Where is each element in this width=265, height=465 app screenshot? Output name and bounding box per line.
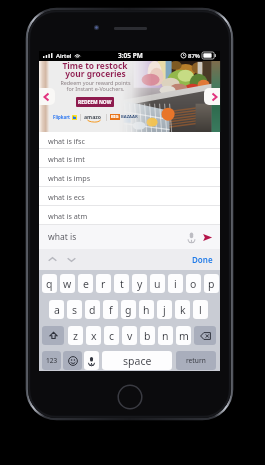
button[interactable]: f (103, 300, 118, 319)
staticText: r (101, 277, 106, 291)
staticText: 3:05 PM (118, 51, 143, 60)
button[interactable]: r (96, 274, 111, 293)
staticText: s (72, 303, 78, 317)
button[interactable] (84, 351, 99, 370)
staticText: e (83, 277, 89, 291)
button[interactable]: d (85, 300, 100, 319)
button[interactable]: v (122, 326, 137, 345)
button[interactable]: l (193, 300, 208, 319)
staticText: o (190, 277, 197, 291)
staticText: what is atm (48, 211, 88, 221)
button[interactable]: Done (185, 250, 220, 269)
button[interactable]: what is atm (39, 206, 220, 225)
staticText: c (109, 329, 115, 343)
staticText: v (127, 329, 133, 343)
staticText: n (162, 329, 169, 343)
button[interactable]: g (121, 300, 136, 319)
staticText: space (123, 354, 152, 368)
staticText: what is imps (48, 173, 91, 183)
staticText: what is ifsc (48, 136, 85, 146)
button[interactable]: space (102, 351, 172, 370)
button[interactable]: 123 (42, 351, 61, 370)
staticText: Airtel (56, 52, 72, 60)
button[interactable]: k (175, 300, 190, 319)
button[interactable]: q (42, 274, 57, 293)
button[interactable]: c (104, 326, 119, 345)
button[interactable]: w (60, 274, 75, 293)
staticText: l (199, 303, 202, 317)
button[interactable] (42, 326, 64, 345)
staticText: b (144, 329, 151, 343)
staticText: g (125, 303, 132, 317)
staticText: amazon (84, 113, 103, 121)
button[interactable]: e (78, 274, 93, 293)
button[interactable]: Send (202, 232, 213, 243)
button[interactable]: Next field (66, 254, 77, 265)
staticText: d (89, 303, 96, 317)
staticText: Flipkart (53, 114, 71, 120)
button[interactable]: p (204, 274, 219, 293)
staticText: 123 (46, 356, 58, 365)
button[interactable]: Previous offer (39, 88, 55, 105)
button[interactable]: s (67, 300, 82, 319)
staticText: what is ecs (48, 192, 85, 202)
button[interactable]: o (186, 274, 201, 293)
staticText: f (109, 303, 113, 317)
button[interactable]: y (132, 274, 147, 293)
staticText: REDEEM NOW (78, 99, 112, 106)
button[interactable]: u (150, 274, 165, 293)
staticText: y (137, 277, 143, 291)
staticText: BIG (111, 114, 119, 120)
button[interactable]: t (114, 274, 129, 293)
staticText: p (208, 277, 215, 291)
staticText: Redeem your reward points for Instant e-… (60, 79, 131, 92)
staticText: z (73, 329, 78, 343)
button[interactable]: a (49, 300, 64, 319)
button[interactable]: n (158, 326, 173, 345)
button[interactable]: what is ecs (39, 187, 220, 206)
button[interactable]: return (176, 351, 216, 370)
button[interactable]: i (168, 274, 183, 293)
button[interactable] (194, 326, 216, 345)
staticText: w (63, 277, 72, 291)
staticText: return (186, 356, 206, 365)
button[interactable]: what is imps (39, 168, 220, 187)
staticText: your groceries (65, 68, 126, 79)
staticText: q (46, 277, 53, 291)
staticText: a (54, 303, 60, 317)
button[interactable]: what is ifsc (39, 132, 220, 149)
button[interactable]: j (157, 300, 172, 319)
staticText: j (163, 303, 166, 317)
staticText: what is imt (48, 154, 85, 164)
staticText: u (154, 277, 161, 291)
button[interactable]: Voice input (187, 231, 196, 244)
button[interactable]: REDEEM NOW (76, 97, 114, 107)
button[interactable]: b (140, 326, 155, 345)
button[interactable]: z (68, 326, 83, 345)
button[interactable]: what is imt (39, 149, 220, 168)
button[interactable]: h (139, 300, 154, 319)
staticText: m (179, 329, 189, 343)
button[interactable]: Next offer (204, 88, 220, 105)
staticText: x (91, 329, 97, 343)
staticText: i (174, 277, 177, 291)
staticText: what is (48, 231, 77, 243)
button[interactable] (63, 351, 82, 370)
staticText: k (180, 303, 186, 317)
staticText: Time to restock (62, 60, 128, 71)
staticText: BAZAAR (121, 114, 138, 120)
staticText: Done (192, 254, 213, 265)
staticText: h (143, 303, 150, 317)
staticText: 87% (188, 52, 200, 60)
button[interactable]: Previous field (47, 254, 58, 265)
staticText: t (120, 277, 124, 291)
button[interactable]: m (176, 326, 191, 345)
button[interactable]: x (86, 326, 101, 345)
